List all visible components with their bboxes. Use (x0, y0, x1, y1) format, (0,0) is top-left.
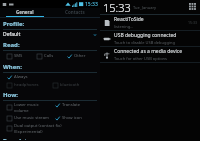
button[interactable]: ReactiToSide (100, 15, 200, 30)
staticText: bluetooth (60, 82, 80, 88)
staticText: Lower music volume (14, 102, 39, 113)
staticText: General (16, 9, 34, 15)
staticText: Translate: (3, 137, 33, 140)
staticText: Tue, January (133, 5, 157, 10)
staticText: Contacts (65, 9, 85, 15)
staticText: Connected as a media device (114, 48, 183, 55)
staticText: How: (3, 91, 19, 99)
button[interactable]: Default (3, 30, 97, 39)
button[interactable]: headphones (7, 82, 53, 88)
button[interactable]: Connected as a media device (100, 47, 200, 62)
button[interactable]: Calls (37, 53, 67, 59)
staticText: USB debugging connected (114, 32, 177, 39)
button[interactable]: Always (7, 74, 67, 80)
staticText: 15:33 (188, 20, 197, 25)
button[interactable]: Dual output (contact fix) (Experimental) (7, 123, 97, 134)
staticText: Other (74, 53, 86, 59)
staticText: 15:33 (103, 0, 131, 14)
staticText: headphones (14, 82, 39, 88)
button[interactable]: Use music stream (7, 115, 55, 121)
staticText: ReactiToSide (114, 16, 144, 23)
button[interactable]: General (0, 8, 50, 17)
button[interactable]: Contacts (50, 8, 100, 17)
button[interactable]: Lower music volume (7, 102, 55, 113)
button[interactable]: Settings (189, 3, 197, 11)
staticText: Dual output (contact fix) (Experimental) (14, 123, 62, 134)
staticText: Calls (44, 53, 54, 59)
staticText: Translate (62, 102, 81, 108)
staticText: Read: (3, 41, 20, 49)
button[interactable]: Translate (55, 102, 97, 108)
button[interactable]: Other (67, 53, 97, 59)
staticText: Use music stream (14, 115, 49, 121)
staticText: SMS (14, 53, 23, 59)
button[interactable]: SMS (7, 53, 37, 59)
staticText: Show icon (62, 115, 82, 121)
staticText: listening... (114, 24, 134, 29)
staticText: Default (3, 31, 21, 38)
staticText: 15:33 (85, 1, 98, 8)
staticText: Profile: (3, 20, 25, 28)
staticText: Always (14, 74, 28, 80)
staticText: Touch to disable USB debugging (114, 40, 175, 45)
button[interactable]: Show icon (55, 115, 97, 121)
button[interactable]: bluetooth (53, 82, 97, 88)
button[interactable]: USB debugging connected (100, 31, 200, 46)
staticText: When: (3, 63, 22, 71)
staticText: Touch for other USB options (114, 56, 167, 61)
